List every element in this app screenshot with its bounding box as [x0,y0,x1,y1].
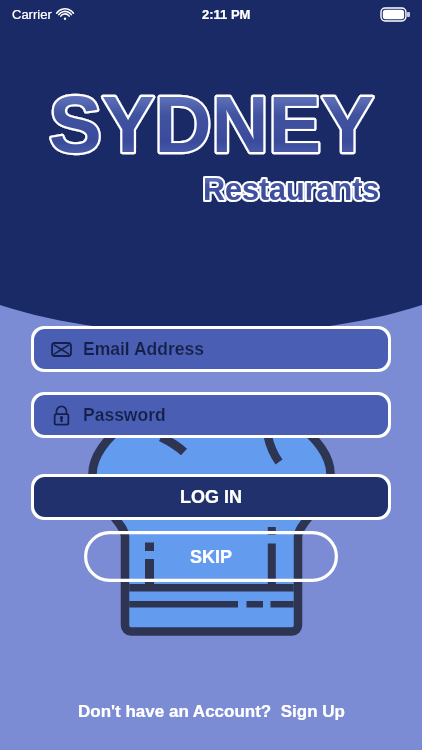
staticText: SYDNEY [49,80,374,168]
button[interactable]: Don't have an Account? Sign Up [70,698,353,725]
staticText: 2:11 PM [202,7,251,22]
staticText: Email Address [83,339,204,359]
staticText: Password [83,405,166,425]
staticText: Don't have an Account? Sign Up [78,702,345,721]
button[interactable]: Email Address [34,329,388,369]
staticText: Restaurants [203,172,380,206]
staticText: LOG IN [180,487,242,507]
staticText: Restaurants [203,172,380,206]
button[interactable]: SKIP [84,531,338,582]
staticText: SYDNEY [49,80,374,168]
button[interactable]: Password [34,395,388,435]
staticText: SKIP [190,547,233,567]
button[interactable]: LOG IN [34,477,388,517]
staticText: Carrier [12,7,52,22]
